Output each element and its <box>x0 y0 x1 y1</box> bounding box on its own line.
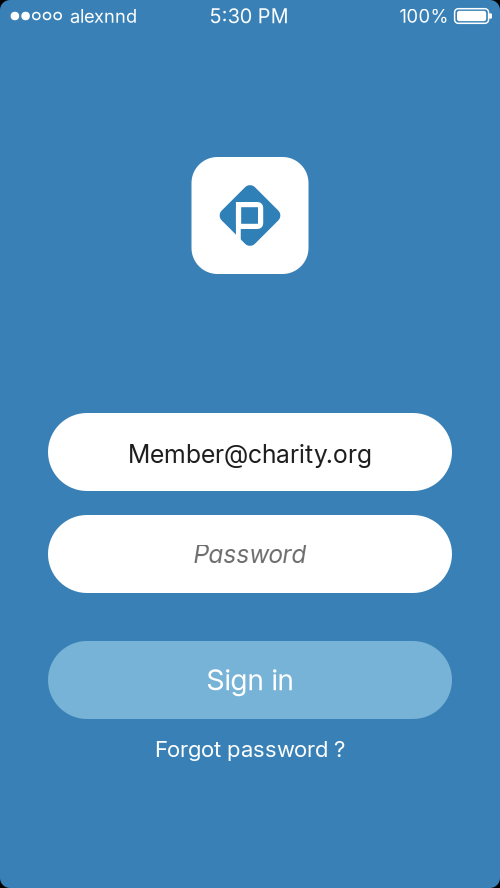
staticText: Password <box>193 539 306 569</box>
button[interactable]: Sign in <box>48 641 452 719</box>
staticText: alexnnd <box>70 5 137 27</box>
staticText: Member@charity.org <box>128 439 372 469</box>
staticText: 100% <box>400 5 449 27</box>
button[interactable]: Forgot password ? <box>48 731 452 767</box>
staticText: Sign in <box>206 663 293 697</box>
button[interactable]: Member@charity.org <box>48 413 452 491</box>
staticText: Forgot password ? <box>155 736 345 762</box>
staticText: 5:30 PM <box>210 4 289 28</box>
button[interactable]: Password <box>48 515 452 593</box>
